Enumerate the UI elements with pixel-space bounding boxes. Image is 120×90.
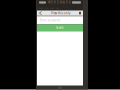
staticText: deals [50, 7, 54, 9]
staticText: W O R D M A R K [48, 1, 71, 4]
button[interactable]: Back [37, 11, 44, 15]
staticText: Search [56, 26, 64, 29]
staticText: home [39, 7, 43, 9]
button[interactable]: Enter postcode [37, 16, 83, 24]
button[interactable]: Site logo [39, 1, 46, 4]
staticText: View this only [51, 11, 70, 15]
staticText: shop [45, 7, 49, 9]
button[interactable]: Open in app [72, 1, 81, 4]
staticText: help [56, 7, 59, 9]
staticText: Enter postcode [40, 18, 61, 22]
button[interactable]: Search [37, 24, 83, 31]
button[interactable]: More [77, 11, 83, 15]
